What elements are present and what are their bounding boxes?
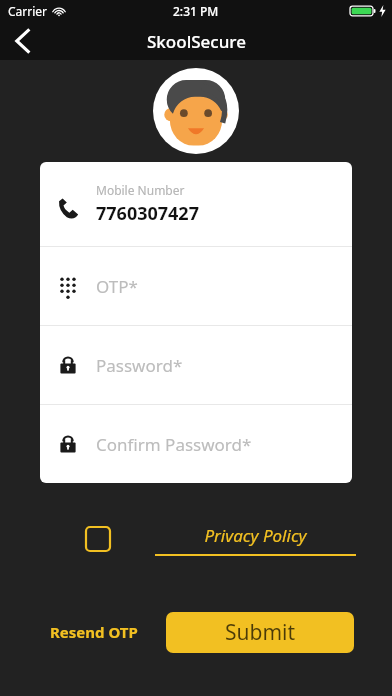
button[interactable]: Submit <box>166 612 354 653</box>
button[interactable]: Back <box>0 22 44 60</box>
staticText: OTP* <box>96 275 138 298</box>
staticText: 2:31 PM <box>173 3 219 19</box>
button[interactable]: Mobile Number <box>40 162 352 246</box>
staticText: Privacy Policy <box>204 524 307 547</box>
staticText: 7760307427 <box>96 201 199 226</box>
button[interactable]: Accept privacy policy <box>85 526 111 552</box>
staticText: SkoolSecure <box>147 30 246 53</box>
staticText: Carrier <box>8 3 48 19</box>
staticText: Resend OTP <box>50 622 138 642</box>
button[interactable]: OTP* <box>40 247 352 325</box>
button[interactable]: Privacy Policy <box>155 524 356 556</box>
button[interactable]: Password* <box>40 326 352 404</box>
staticText: Password* <box>96 354 183 377</box>
button[interactable]: Resend OTP <box>40 616 148 648</box>
staticText: Submit <box>225 618 296 647</box>
staticText: Confirm Password* <box>96 433 252 456</box>
staticText: Mobile Number <box>96 182 185 198</box>
button[interactable]: Confirm Password* <box>40 405 352 483</box>
